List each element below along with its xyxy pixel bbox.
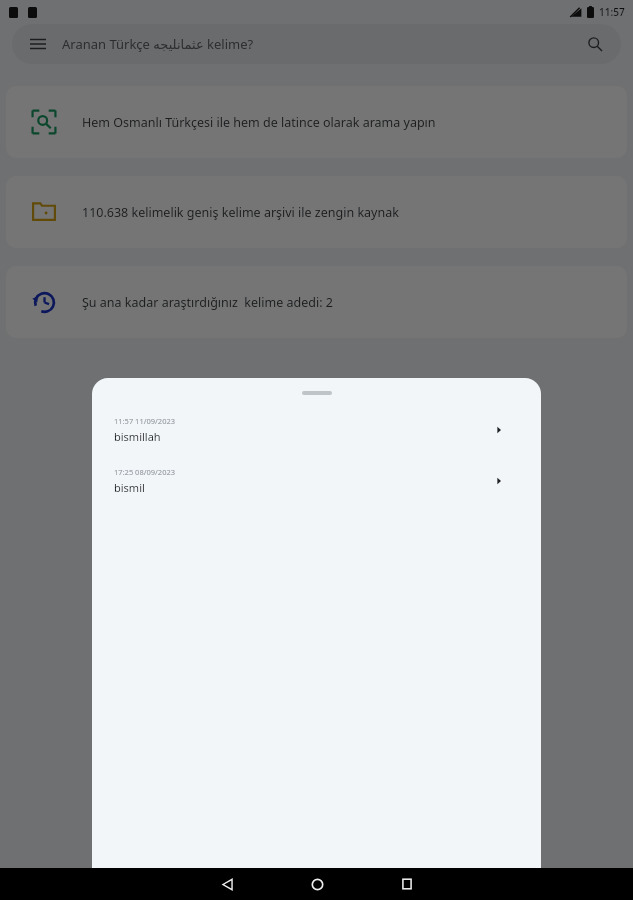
button[interactable]: Hem Osmanlı Türkçesi ile hem de latince … (6, 86, 627, 158)
staticText: Şu ana kadar araştırdığınız kelime adedi… (82, 294, 333, 311)
button[interactable]: Back (196, 868, 258, 900)
staticText: bismillah (114, 429, 161, 444)
button[interactable]: Home (286, 868, 348, 900)
button[interactable]: Recent apps (376, 868, 438, 900)
staticText: 110.638 kelimelik geniş kelime arşivi il… (82, 204, 399, 221)
button[interactable]: Şu ana kadar araştırdığınız kelime adedi… (6, 266, 627, 338)
other: Open (491, 473, 507, 489)
staticText: 11:57 11/09/2023 (114, 416, 176, 426)
staticText: 11:57 (599, 5, 625, 19)
button[interactable]: 11:57 11/09/2023 (92, 404, 541, 455)
button[interactable]: Menu (12, 24, 621, 64)
button[interactable]: Menu (26, 32, 50, 56)
button[interactable]: Search (583, 32, 607, 56)
button[interactable]: 17:25 08/09/2023 (92, 455, 541, 506)
button[interactable]: 110.638 kelimelik geniş kelime arşivi il… (6, 176, 627, 248)
staticText: Hem Osmanlı Türkçesi ile hem de latince … (82, 114, 436, 131)
other: Open (491, 422, 507, 438)
staticText: Aranan Türkçe عثمانليجه kelime? (62, 35, 254, 53)
staticText: 17:25 08/09/2023 (114, 467, 176, 477)
staticText: bismil (114, 480, 145, 495)
